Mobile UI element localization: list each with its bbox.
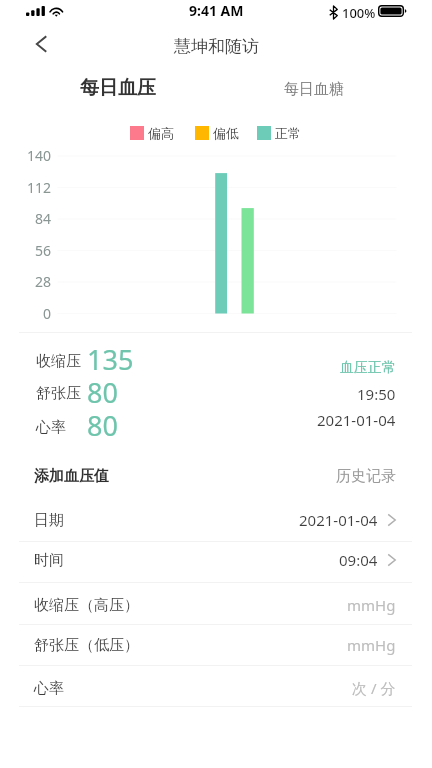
staticText: 9:41 AM xyxy=(189,1,244,20)
button[interactable]: 添加血压值 xyxy=(0,458,432,494)
button[interactable]: 心率 xyxy=(0,668,432,708)
button[interactable]: 日期 xyxy=(0,500,432,540)
button[interactable]: 收缩压（高压） xyxy=(0,585,432,625)
staticText: 次 / 分 xyxy=(352,678,396,698)
staticText: 添加血压值 xyxy=(34,467,109,486)
button[interactable]: Back xyxy=(23,28,59,60)
button[interactable]: 舒张压（低压） xyxy=(0,625,432,665)
staticText: mmHg xyxy=(347,595,396,615)
staticText: 28 xyxy=(35,272,52,291)
staticText: 09:04 xyxy=(339,550,378,570)
staticText: 舒张压（低压） xyxy=(34,636,139,655)
staticText: 135 xyxy=(87,341,134,378)
staticText: 2021-01-04 xyxy=(299,510,378,530)
button[interactable]: 时间 xyxy=(0,540,432,580)
staticText: 112 xyxy=(27,178,52,197)
staticText: 日期 xyxy=(34,511,64,530)
staticText: 血压正常 xyxy=(340,359,396,377)
staticText: 84 xyxy=(35,209,52,228)
staticText: 2021-01-04 xyxy=(317,410,396,430)
staticText: 偏低 xyxy=(213,125,239,141)
staticText: 收缩压 xyxy=(36,352,81,371)
staticText: 收缩压（高压） xyxy=(34,596,139,615)
staticText: 140 xyxy=(27,146,52,165)
staticText: mmHg xyxy=(347,635,396,655)
staticText: 正常 xyxy=(275,125,301,141)
staticText: 心率 xyxy=(36,418,66,437)
staticText: 心率 xyxy=(34,679,64,698)
staticText: 80 xyxy=(87,374,118,411)
staticText: 19:50 xyxy=(357,384,396,404)
staticText: 偏高 xyxy=(148,125,174,141)
staticText: 0 xyxy=(43,304,52,323)
button[interactable]: 历史记录 xyxy=(336,467,396,486)
staticText: 80 xyxy=(87,407,118,444)
staticText: 舒张压 xyxy=(36,384,81,403)
staticText: 56 xyxy=(35,241,52,260)
button[interactable]: 每日血压 xyxy=(80,76,156,100)
staticText: 慧坤和随访 xyxy=(174,36,259,57)
staticText: 时间 xyxy=(34,551,64,570)
button[interactable]: 每日血糖 xyxy=(284,80,344,99)
staticText: 100% xyxy=(342,4,376,22)
